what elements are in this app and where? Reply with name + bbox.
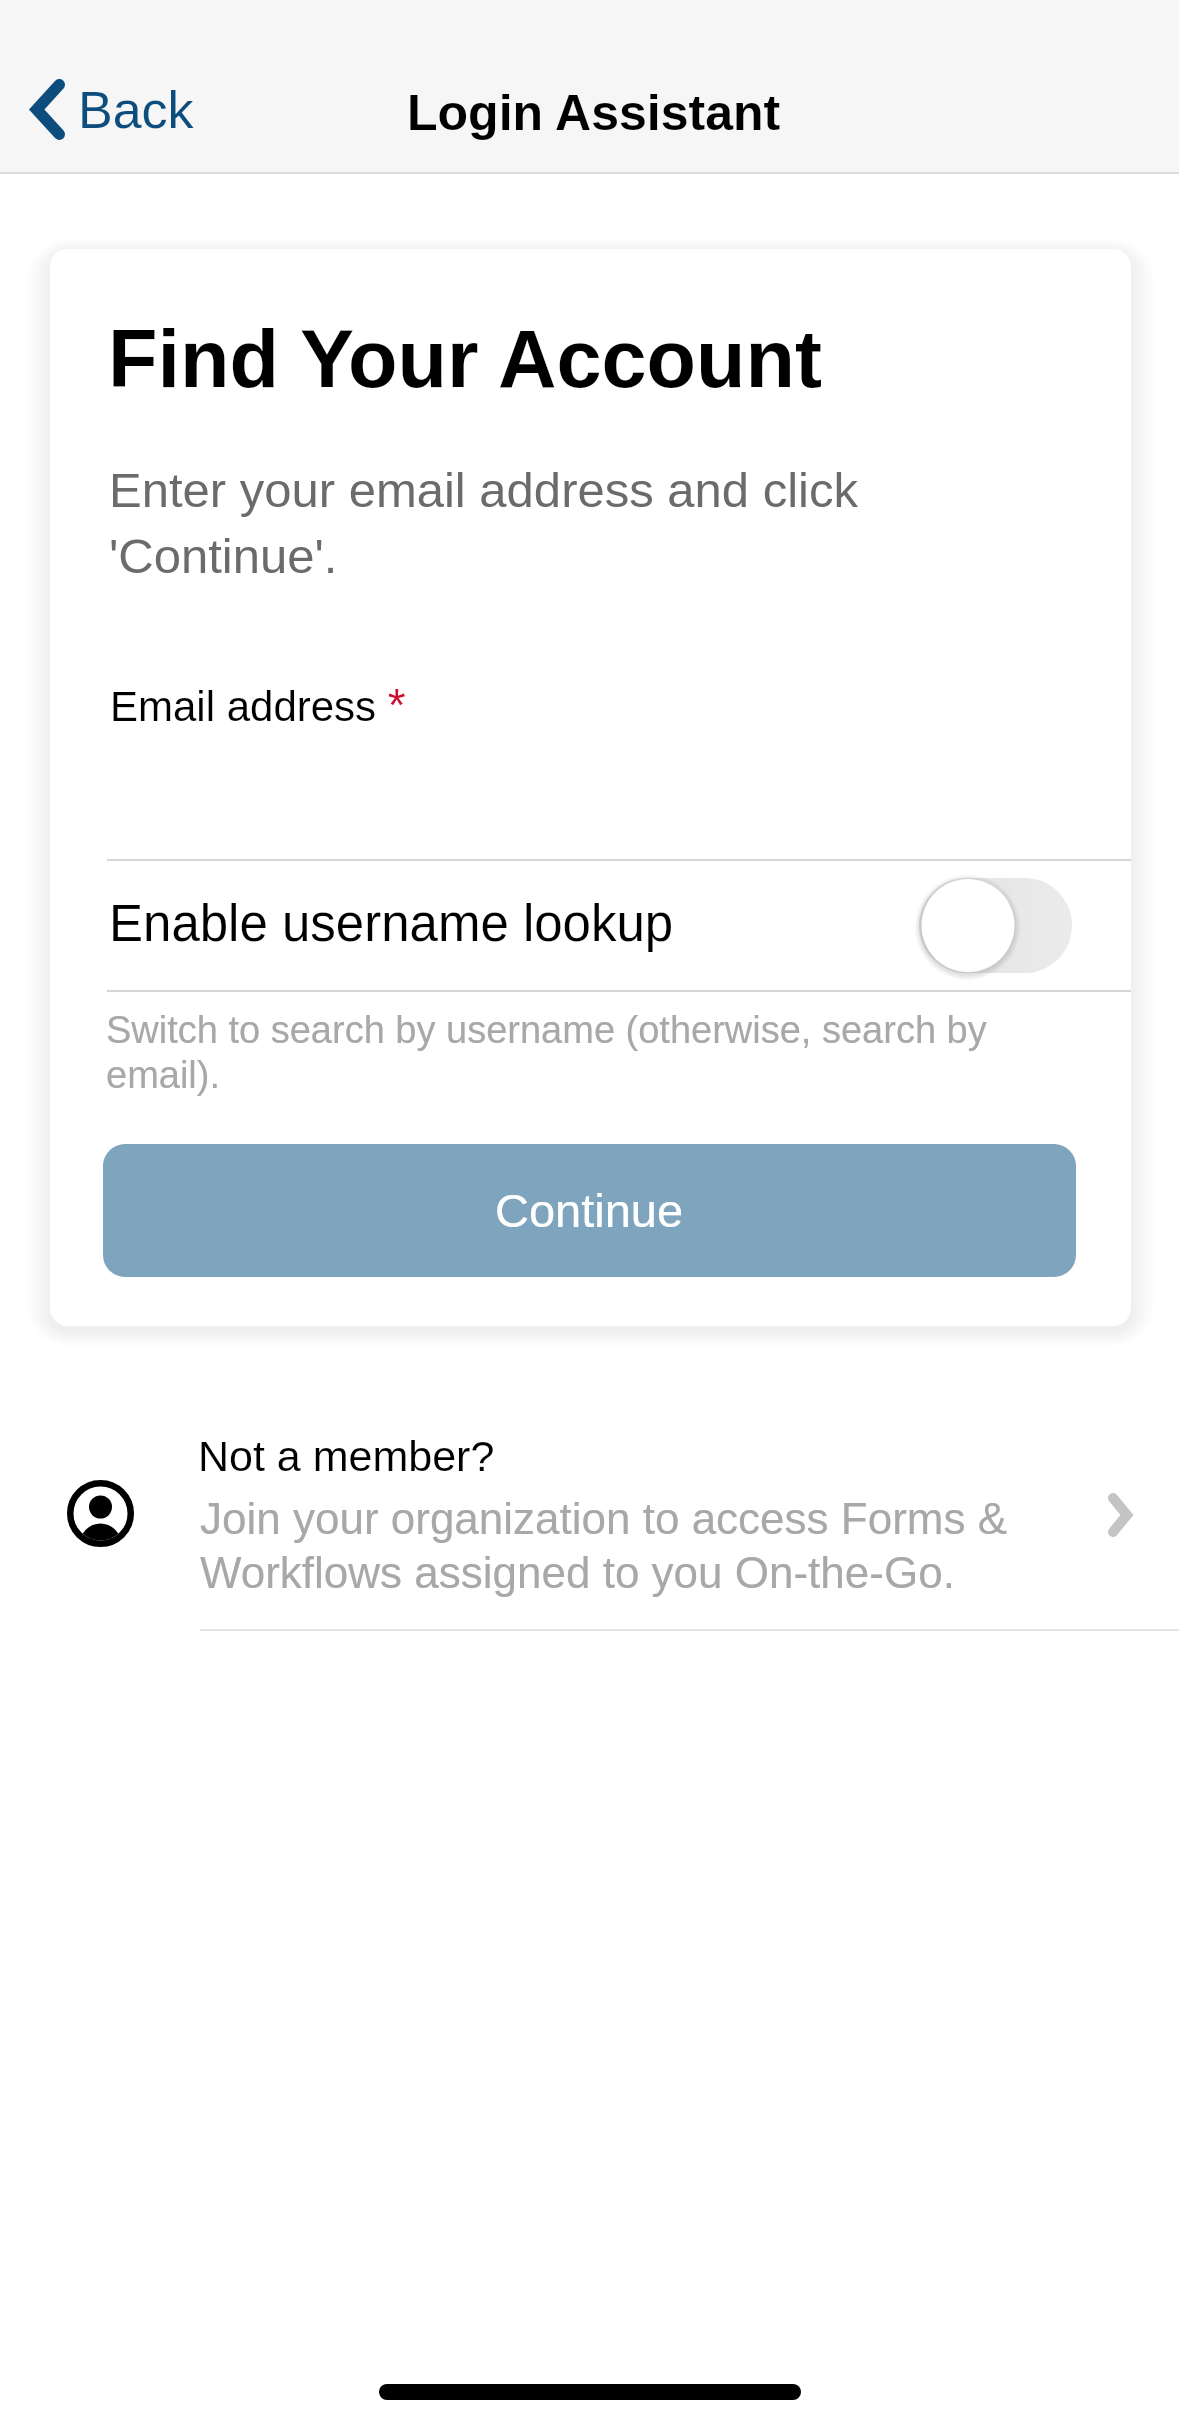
staticText: Login Assistant xyxy=(407,85,781,141)
button[interactable]: Not a member? xyxy=(0,1406,1179,1630)
staticText: Join your organization to access Forms &… xyxy=(200,1491,1045,1599)
button[interactable]: Continue xyxy=(103,1144,1076,1277)
staticText: Email address * xyxy=(110,679,406,730)
staticText: Not a member? xyxy=(198,1432,495,1480)
other: Join your organization xyxy=(1080,1475,1160,1555)
staticText: Back xyxy=(78,81,194,139)
staticText: Enable username lookup xyxy=(109,895,674,952)
staticText: Continue xyxy=(495,1184,684,1237)
button[interactable]: Back xyxy=(16,71,210,148)
staticText: Find Your Account xyxy=(108,314,822,404)
button[interactable]: Enable username lookup xyxy=(919,878,1072,973)
staticText: Enter your email address and click 'Cont… xyxy=(109,454,909,586)
staticText: Switch to search by username (otherwise,… xyxy=(106,1007,1009,1097)
